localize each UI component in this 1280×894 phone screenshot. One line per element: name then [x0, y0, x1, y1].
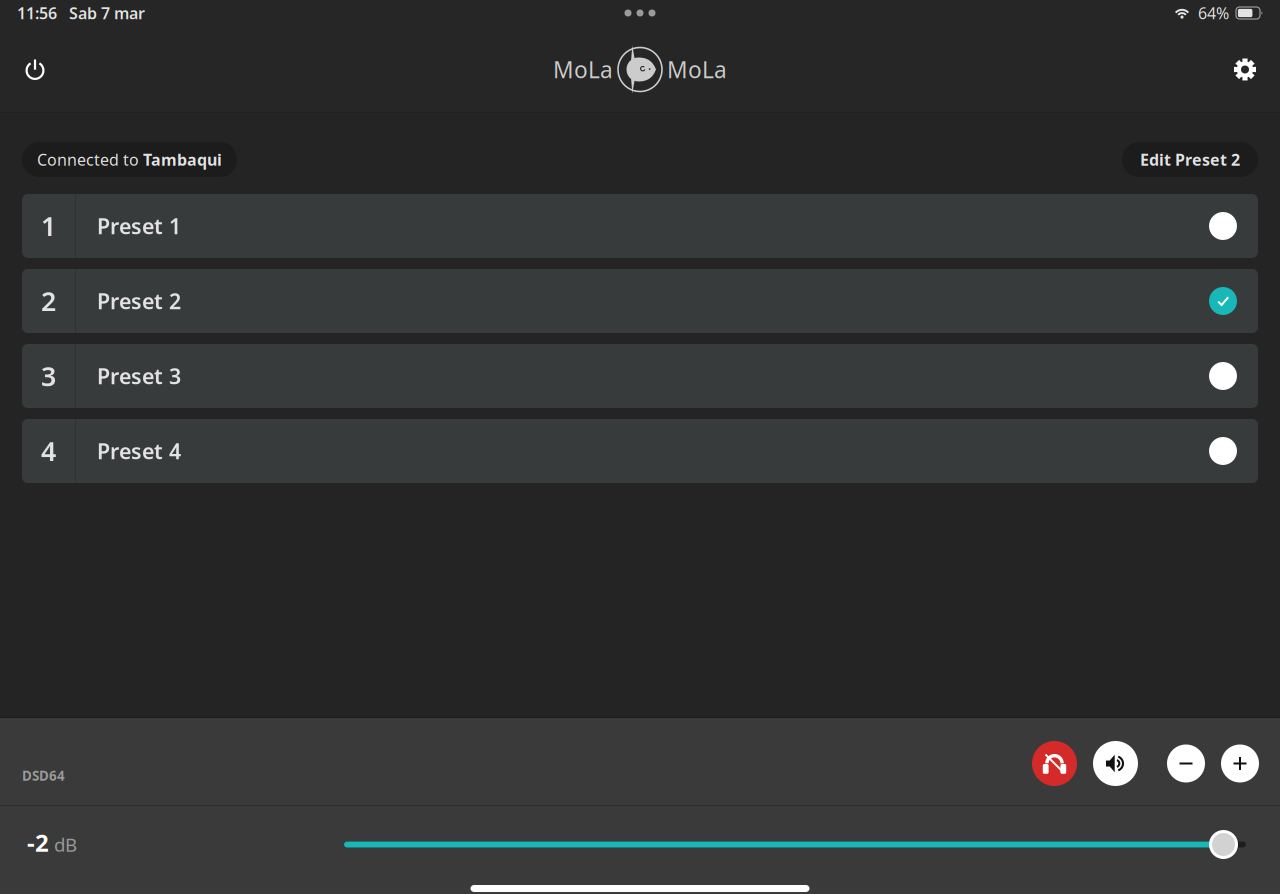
- staticText: Edit Preset 2: [1140, 149, 1240, 170]
- staticText: Tambaqui: [143, 149, 222, 170]
- button[interactable]: 3: [22, 344, 1258, 408]
- button[interactable]: Headphones muted: [1032, 741, 1077, 786]
- staticText: 1: [41, 208, 56, 244]
- staticText: 3: [41, 358, 56, 394]
- staticText: 11:56: [17, 2, 57, 24]
- staticText: MoLa: [667, 54, 727, 84]
- staticText: Connected to: [37, 149, 143, 170]
- button[interactable]: Volume up: [1221, 744, 1259, 782]
- staticText: Preset 3: [97, 362, 181, 390]
- staticText: 4: [41, 433, 56, 469]
- staticText: Preset 1: [97, 212, 181, 240]
- button[interactable]: 2: [22, 269, 1258, 333]
- button[interactable]: Settings: [1222, 46, 1268, 92]
- staticText: -2: [27, 827, 49, 858]
- staticText: MoLa: [553, 54, 613, 84]
- button[interactable]: Edit Preset 2: [1122, 142, 1258, 177]
- button[interactable]: 4: [22, 419, 1258, 483]
- button[interactable]: Volume down: [1167, 744, 1205, 782]
- staticText: Sab 7 mar: [69, 2, 145, 24]
- button[interactable]: Volume level: [344, 829, 1246, 859]
- staticText: dB: [54, 832, 77, 857]
- button[interactable]: 1: [22, 194, 1258, 258]
- button[interactable]: Speaker output: [1093, 741, 1138, 786]
- button[interactable]: Power: [12, 46, 58, 92]
- button[interactable]: Connected to: [22, 142, 237, 177]
- staticText: DSD64: [22, 767, 65, 784]
- staticText: Preset 2: [97, 287, 181, 315]
- staticText: 64%: [1198, 2, 1229, 24]
- staticText: 2: [41, 283, 56, 319]
- staticText: Preset 4: [97, 437, 181, 465]
